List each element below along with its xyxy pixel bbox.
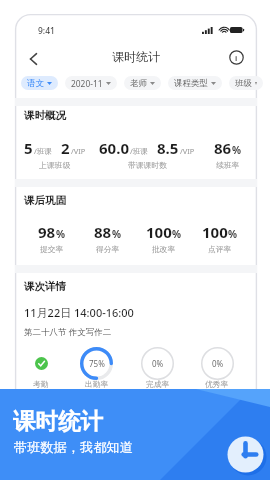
staticText: 0% [212,358,224,369]
button[interactable]: 2020-11 [65,76,117,90]
staticText: 98 [38,222,56,242]
staticText: 完成率 [146,379,170,389]
button[interactable]: 老师 [124,76,161,90]
staticText: 出勤率 [85,379,109,389]
staticText: 优秀率 [205,379,229,389]
staticText: 课时统计 [13,407,103,435]
staticText: 课次详情 [24,280,66,293]
staticText: 9:41 [38,25,55,37]
staticText: 课后巩固 [24,194,66,207]
staticText: 0% [152,358,164,369]
staticText: 班级 [235,78,252,89]
staticText: 提交率 [40,244,64,254]
staticText: 续班率 [216,160,240,170]
staticText: % [232,143,242,157]
staticText: 点评率 [208,244,232,254]
button[interactable]: 课程类型 [168,76,222,90]
staticText: 5 [24,138,33,158]
staticText: % [172,227,182,241]
staticText: 得分率 [96,244,120,254]
staticText: % [228,227,238,241]
staticText: 课时统计 [112,49,160,64]
staticText: 86 [214,138,232,158]
button[interactable]: Clock [227,436,264,473]
staticText: 2020-11 [71,78,103,89]
staticText: 88 [94,222,112,242]
staticText: /VIP [180,146,195,156]
staticText: /班课 [130,146,148,156]
button[interactable]: 班级 [229,76,263,90]
staticText: /VIP [71,146,86,156]
button[interactable]: 语文 [21,76,58,90]
staticText: 100 [146,222,172,242]
staticText: 语文 [27,78,44,89]
staticText: i [235,53,238,63]
staticText: 课程类型 [174,78,208,89]
button[interactable]: Back [19,46,45,72]
staticText: 老师 [130,78,147,89]
staticText: 考勤 [33,379,49,389]
staticText: 课时概况 [24,109,66,122]
staticText: % [112,227,122,241]
staticText: /班课 [34,146,52,156]
staticText: 100 [202,222,228,242]
staticText: 带班数据，我都知道 [14,439,133,456]
staticText: 第二十八节 作文写作二 [24,326,112,338]
staticText: 75% [89,358,105,369]
staticText: % [56,227,66,241]
staticText: 上课班级 [39,160,71,170]
staticText: 批改率 [152,244,176,254]
staticText: 带课课时数 [128,160,167,170]
staticText: 11月22日 14:00-16:00 [24,305,134,320]
staticText: 60.0 [99,138,129,158]
staticText: 2 [61,138,70,158]
staticText: 8.5 [157,138,179,158]
button[interactable]: Info [224,45,249,70]
